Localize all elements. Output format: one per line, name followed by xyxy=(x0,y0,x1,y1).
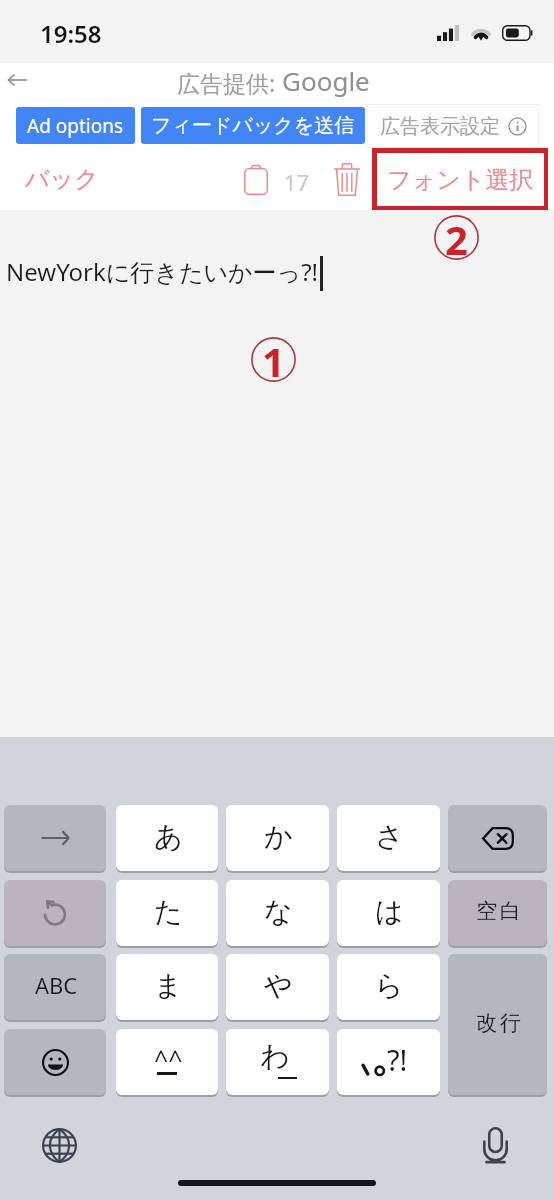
button[interactable]: フィードバックを送信 xyxy=(141,107,365,144)
button[interactable]: わ xyxy=(226,1029,329,1095)
button[interactable]: Back xyxy=(0,62,35,98)
button[interactable]: Clipboard xyxy=(238,161,274,197)
button[interactable] xyxy=(4,805,106,871)
staticText: Ad options xyxy=(27,113,124,139)
staticText: 広告提供: xyxy=(177,67,282,98)
button[interactable]: バック xyxy=(25,164,99,194)
button[interactable]: ABC xyxy=(4,954,106,1020)
staticText: は xyxy=(375,894,404,929)
staticText: Google xyxy=(282,63,370,98)
button[interactable]: た xyxy=(116,880,218,946)
staticText: 19:58 xyxy=(40,17,102,50)
button[interactable]: フォント選択 xyxy=(372,148,548,210)
staticText: ^^ xyxy=(154,1042,183,1076)
button[interactable] xyxy=(4,880,106,946)
button[interactable]: Dictation xyxy=(472,1122,518,1168)
button[interactable]: や xyxy=(226,954,329,1020)
staticText: ま xyxy=(154,968,183,1003)
button[interactable]: ?! xyxy=(337,1029,440,1095)
staticText: や xyxy=(264,968,293,1003)
button[interactable]: 改行 xyxy=(448,954,547,1095)
staticText: か xyxy=(264,819,293,854)
staticText: ABC xyxy=(35,970,78,1000)
staticText: 17 xyxy=(284,167,310,197)
button[interactable] xyxy=(4,1029,106,1095)
staticText: フォント選択 xyxy=(387,165,534,195)
staticText: 空白 xyxy=(475,898,522,924)
button[interactable] xyxy=(448,805,547,871)
button[interactable]: さ xyxy=(337,805,440,871)
staticText: NewYorkに行きたいかーっ?! xyxy=(6,255,319,288)
staticText: 改行 xyxy=(475,1010,522,1036)
button[interactable]: ら xyxy=(337,954,440,1020)
staticText: ら xyxy=(375,968,404,1003)
button[interactable]: ^^ xyxy=(116,1029,218,1095)
staticText: 広告表示設定 xyxy=(380,114,500,139)
button[interactable]: あ xyxy=(116,805,218,871)
staticText: た xyxy=(154,894,183,929)
button[interactable]: な xyxy=(226,880,329,946)
staticText: さ xyxy=(375,819,404,854)
staticText: ?! xyxy=(387,1040,408,1079)
staticText: フィードバックを送信 xyxy=(151,113,355,138)
staticText: わ xyxy=(260,1038,290,1075)
staticText: 2 xyxy=(445,212,468,257)
button[interactable]: 空白 xyxy=(448,880,547,946)
staticText: あ xyxy=(154,819,183,854)
button[interactable]: は xyxy=(337,880,440,946)
button[interactable]: か xyxy=(226,805,329,871)
staticText: 1 xyxy=(262,334,285,379)
button[interactable]: Ad options xyxy=(16,107,135,144)
staticText: な xyxy=(264,894,293,929)
button[interactable]: Delete xyxy=(329,161,365,197)
button[interactable]: Change keyboard xyxy=(36,1122,82,1168)
button[interactable]: ま xyxy=(116,954,218,1020)
button[interactable]: 広告表示設定 xyxy=(368,105,538,147)
